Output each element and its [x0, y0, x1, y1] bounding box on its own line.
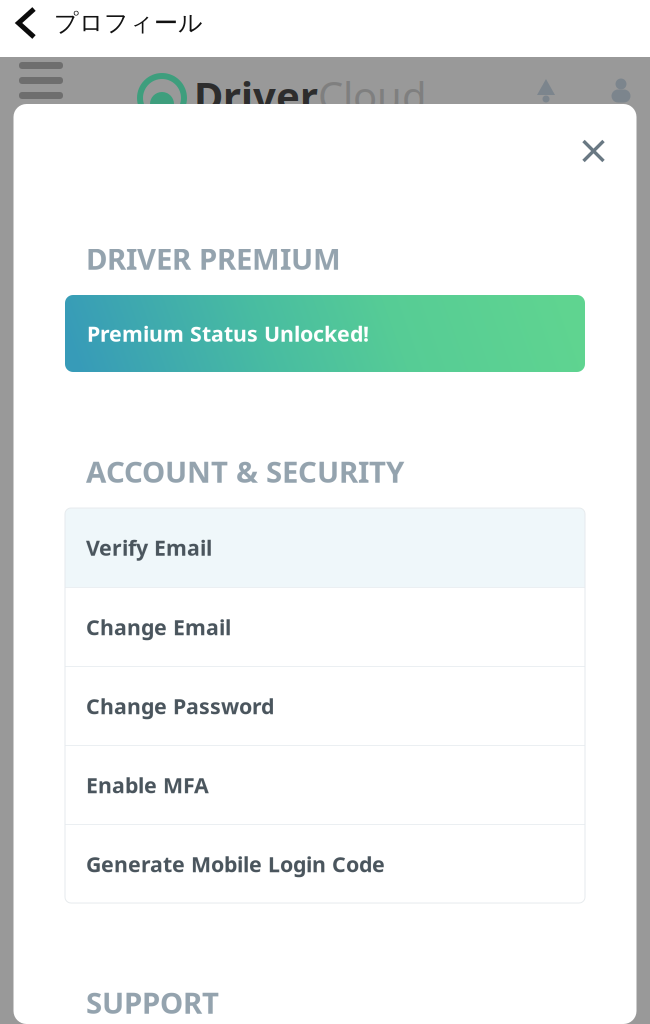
button[interactable]: Verify Email — [65, 508, 585, 587]
button[interactable]: Generate Mobile Login Code — [65, 824, 585, 903]
button[interactable]: Close — [565, 123, 621, 179]
staticText: Enable MFA — [86, 771, 209, 799]
staticText: DRIVER PREMIUM — [86, 239, 341, 278]
staticText: Driver — [194, 69, 318, 122]
button[interactable]: Enable MFA — [65, 745, 585, 824]
staticText: Change Email — [86, 613, 231, 641]
staticText: Premium Status Unlocked! — [87, 319, 369, 348]
staticText: Change Password — [86, 692, 274, 720]
button[interactable]: Change Email — [65, 587, 585, 666]
staticText: ACCOUNT & SECURITY — [86, 452, 404, 491]
button[interactable]: Change Password — [65, 666, 585, 745]
staticText: Generate Mobile Login Code — [86, 850, 385, 878]
staticText: プロフィール — [54, 8, 203, 38]
staticText: Verify Email — [86, 533, 212, 562]
staticText: SUPPORT — [86, 983, 219, 1022]
staticText: Cloud — [318, 69, 427, 122]
button[interactable]: プロフィール — [0, 3, 203, 43]
